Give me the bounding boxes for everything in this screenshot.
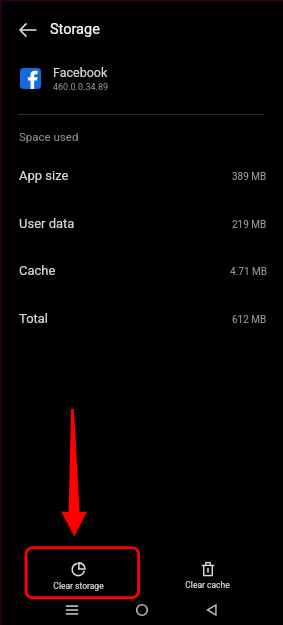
button[interactable]: Back [200,598,224,622]
staticText: 4.71 MB [230,266,267,278]
button[interactable]: Home [130,598,154,622]
staticText: Cache [19,263,56,278]
button[interactable]: User data [0,200,283,247]
staticText: 612 MB [232,314,267,326]
staticText: Storage [50,21,100,38]
staticText: 219 MB [232,219,267,231]
button[interactable]: Cache [0,247,283,294]
staticText: Clear cache [185,580,230,590]
staticText: 389 MB [232,171,267,183]
button[interactable]: Back [5,7,50,52]
staticText: App size [19,168,69,183]
staticText: User data [19,216,75,231]
button[interactable]: App size [0,152,283,199]
staticText: Total [19,311,49,326]
staticText: 460.0.0.34.89 [53,82,109,93]
staticText: Facebook [53,65,108,80]
button[interactable]: Clear cache [151,551,263,598]
button[interactable]: Recent apps [60,598,84,622]
button[interactable]: Clear storage [22,551,134,598]
button[interactable]: Total [0,295,283,342]
staticText: Space used [19,130,79,143]
staticText: Clear storage [53,581,104,591]
